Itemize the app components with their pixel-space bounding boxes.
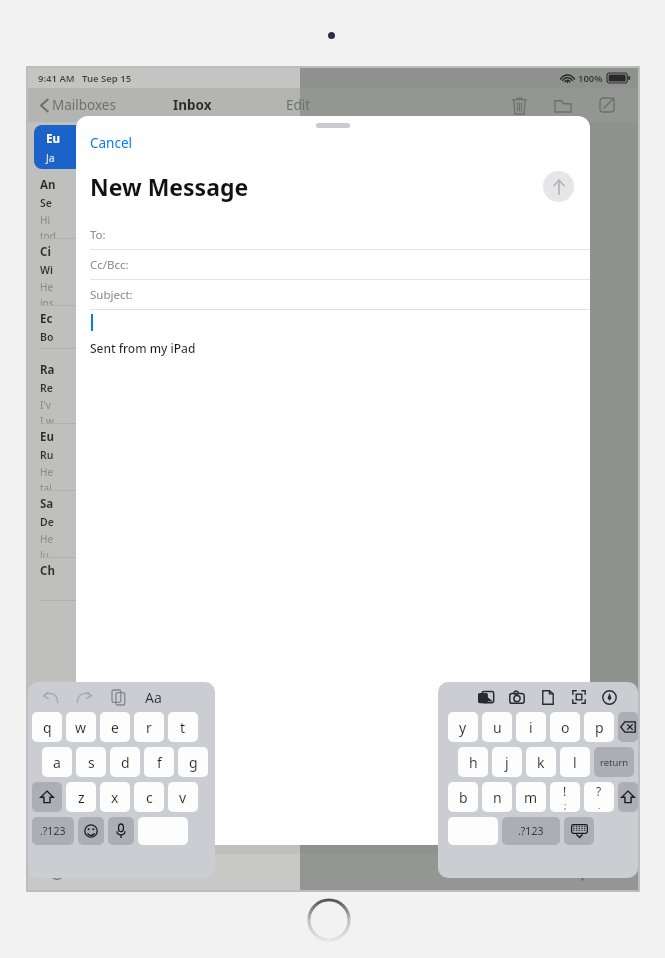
staticText: Ru (40, 448, 54, 462)
button[interactable]: Send (543, 171, 574, 202)
button[interactable]: Photos (470, 682, 501, 712)
button[interactable] (618, 782, 638, 812)
button[interactable]: t (168, 712, 198, 742)
staticText: 9:41 AM (38, 72, 75, 85)
staticText: u (493, 718, 502, 737)
staticText: Edit (286, 96, 311, 114)
staticText: tal (40, 481, 52, 490)
button[interactable]: o (550, 712, 580, 742)
button[interactable]: Mailboxes (40, 88, 116, 122)
staticText: Eu (40, 429, 54, 445)
button[interactable]: y (448, 712, 478, 742)
button[interactable]: a (42, 747, 72, 777)
button[interactable]: e (100, 712, 130, 742)
staticText: Wi (40, 263, 53, 277)
button[interactable]: Ch (28, 558, 300, 600)
button[interactable]: Ci (28, 239, 300, 305)
button[interactable]: Document (532, 682, 563, 712)
button[interactable]: Cc/Bcc: (76, 250, 590, 280)
button[interactable]: x (100, 782, 130, 812)
staticText: q (43, 718, 52, 737)
button[interactable]: p (584, 712, 614, 742)
button[interactable]: Paste (104, 683, 132, 711)
button[interactable] (564, 817, 594, 845)
button[interactable]: .?123 (502, 817, 560, 845)
button[interactable]: Eu (28, 424, 300, 490)
button[interactable] (32, 782, 62, 812)
button[interactable]: c (134, 782, 164, 812)
staticText: l (573, 753, 577, 772)
button[interactable]: b (448, 782, 478, 812)
button[interactable]: An (28, 172, 300, 238)
staticText: Tue Sep 15 (82, 72, 132, 85)
button[interactable]: r (134, 712, 164, 742)
staticText: ins (40, 296, 54, 305)
staticText: g (189, 753, 198, 772)
button[interactable]: q (32, 712, 62, 742)
button[interactable]: Edit (286, 88, 311, 122)
button[interactable]: Undo (36, 683, 64, 711)
button[interactable]: z (66, 782, 96, 812)
button[interactable]: Reply (558, 854, 598, 890)
button[interactable] (138, 817, 188, 845)
button[interactable]: g (178, 747, 208, 777)
staticText: Ch (40, 563, 55, 579)
button[interactable]: j (492, 747, 522, 777)
staticText: m (524, 788, 538, 807)
button[interactable]: w (66, 712, 96, 742)
staticText: y (459, 718, 467, 737)
button[interactable]: Markup (594, 682, 625, 712)
button[interactable]: Compose (590, 88, 624, 122)
button[interactable]: m (516, 782, 546, 812)
button[interactable]: .?123 (32, 817, 74, 845)
staticText: i (529, 718, 533, 737)
staticText: w (75, 718, 87, 737)
staticText: An (40, 177, 56, 193)
button[interactable]: d (110, 747, 140, 777)
button[interactable]: Scan (563, 682, 594, 712)
button[interactable]: Ec (28, 306, 300, 348)
button[interactable]: Redo (70, 683, 98, 711)
button[interactable]: v (168, 782, 198, 812)
button[interactable] (618, 712, 638, 742)
staticText: s (88, 753, 95, 772)
staticText: Mailboxes (52, 96, 116, 114)
button[interactable]: i (516, 712, 546, 742)
button[interactable]: Aa (138, 683, 168, 711)
button[interactable]: Cancel (90, 134, 133, 152)
button[interactable]: Filter (40, 854, 74, 890)
button[interactable]: k (526, 747, 556, 777)
staticText: Cancel (90, 134, 133, 152)
button[interactable]: n (482, 782, 512, 812)
button[interactable]: ! (550, 782, 580, 812)
staticText: Sa (40, 496, 54, 512)
button[interactable]: h (458, 747, 488, 777)
staticText: Cc/Bcc: (90, 257, 129, 273)
button[interactable]: Subject: (76, 280, 590, 310)
button[interactable]: To: (76, 220, 590, 250)
button[interactable]: f (144, 747, 174, 777)
button[interactable]: Sa (28, 491, 300, 557)
staticText: Eu (46, 131, 60, 147)
button[interactable]: Ra (28, 357, 300, 423)
staticText: Subject: (90, 287, 133, 303)
button[interactable] (108, 817, 134, 845)
button[interactable]: Camera (501, 682, 532, 712)
staticText: Sent from my iPad (90, 340, 196, 356)
button[interactable] (448, 817, 498, 845)
button[interactable]: s (76, 747, 106, 777)
button[interactable]: Move to folder (546, 88, 580, 122)
button[interactable]: l (560, 747, 590, 777)
staticText: New Message (90, 171, 249, 202)
button[interactable]: u (482, 712, 512, 742)
staticText: Inbox (173, 96, 212, 114)
staticText: r (146, 718, 152, 737)
button[interactable]: ? (584, 782, 614, 812)
button[interactable]: Eu (34, 125, 294, 169)
button[interactable]: return (594, 747, 634, 777)
button[interactable]: Delete (502, 88, 536, 122)
button[interactable] (78, 817, 104, 845)
staticText: h (469, 753, 478, 772)
staticText: Ra (40, 362, 55, 378)
staticText: ; (564, 799, 567, 811)
